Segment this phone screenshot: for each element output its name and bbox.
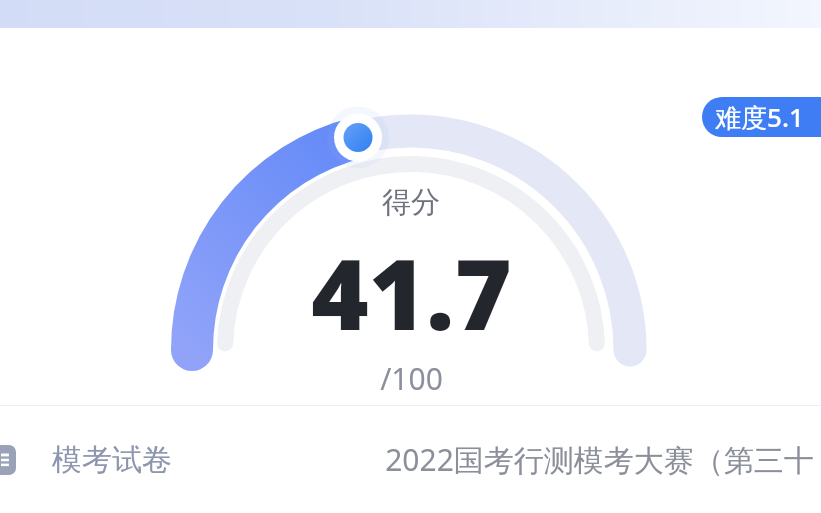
button[interactable]: 难度5.1	[702, 97, 821, 137]
staticText: /100	[380, 358, 443, 399]
staticText: 2022国考行测模考大赛（第三十三季）	[378, 439, 821, 480]
staticText: 模考试卷	[52, 441, 172, 479]
staticText: 41.7	[311, 225, 512, 358]
staticText: 得分	[382, 184, 440, 221]
other: 模考试卷	[0, 445, 16, 475]
button[interactable]: 模考试卷	[0, 406, 821, 513]
staticText: 难度5.1	[715, 99, 804, 135]
